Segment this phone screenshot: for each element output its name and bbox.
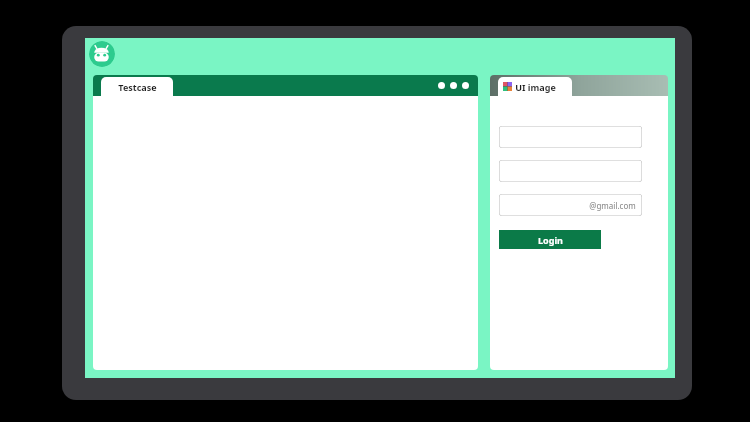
- staticText: Login: [538, 234, 563, 246]
- staticText: UI image: [515, 81, 556, 93]
- button[interactable]: Login: [499, 230, 601, 249]
- button[interactable]: @gmail.com: [499, 194, 642, 216]
- button[interactable]: Minimize: [438, 82, 445, 89]
- button[interactable]: [499, 126, 642, 148]
- button[interactable]: App logo: [89, 41, 115, 67]
- button[interactable]: Maximize: [450, 82, 457, 89]
- button[interactable]: [499, 160, 642, 182]
- button[interactable]: Testcase: [101, 77, 173, 96]
- staticText: Testcase: [118, 81, 157, 93]
- staticText: @gmail.com: [589, 200, 636, 211]
- button[interactable]: UI image: [503, 77, 572, 96]
- button[interactable]: Close: [462, 82, 469, 89]
